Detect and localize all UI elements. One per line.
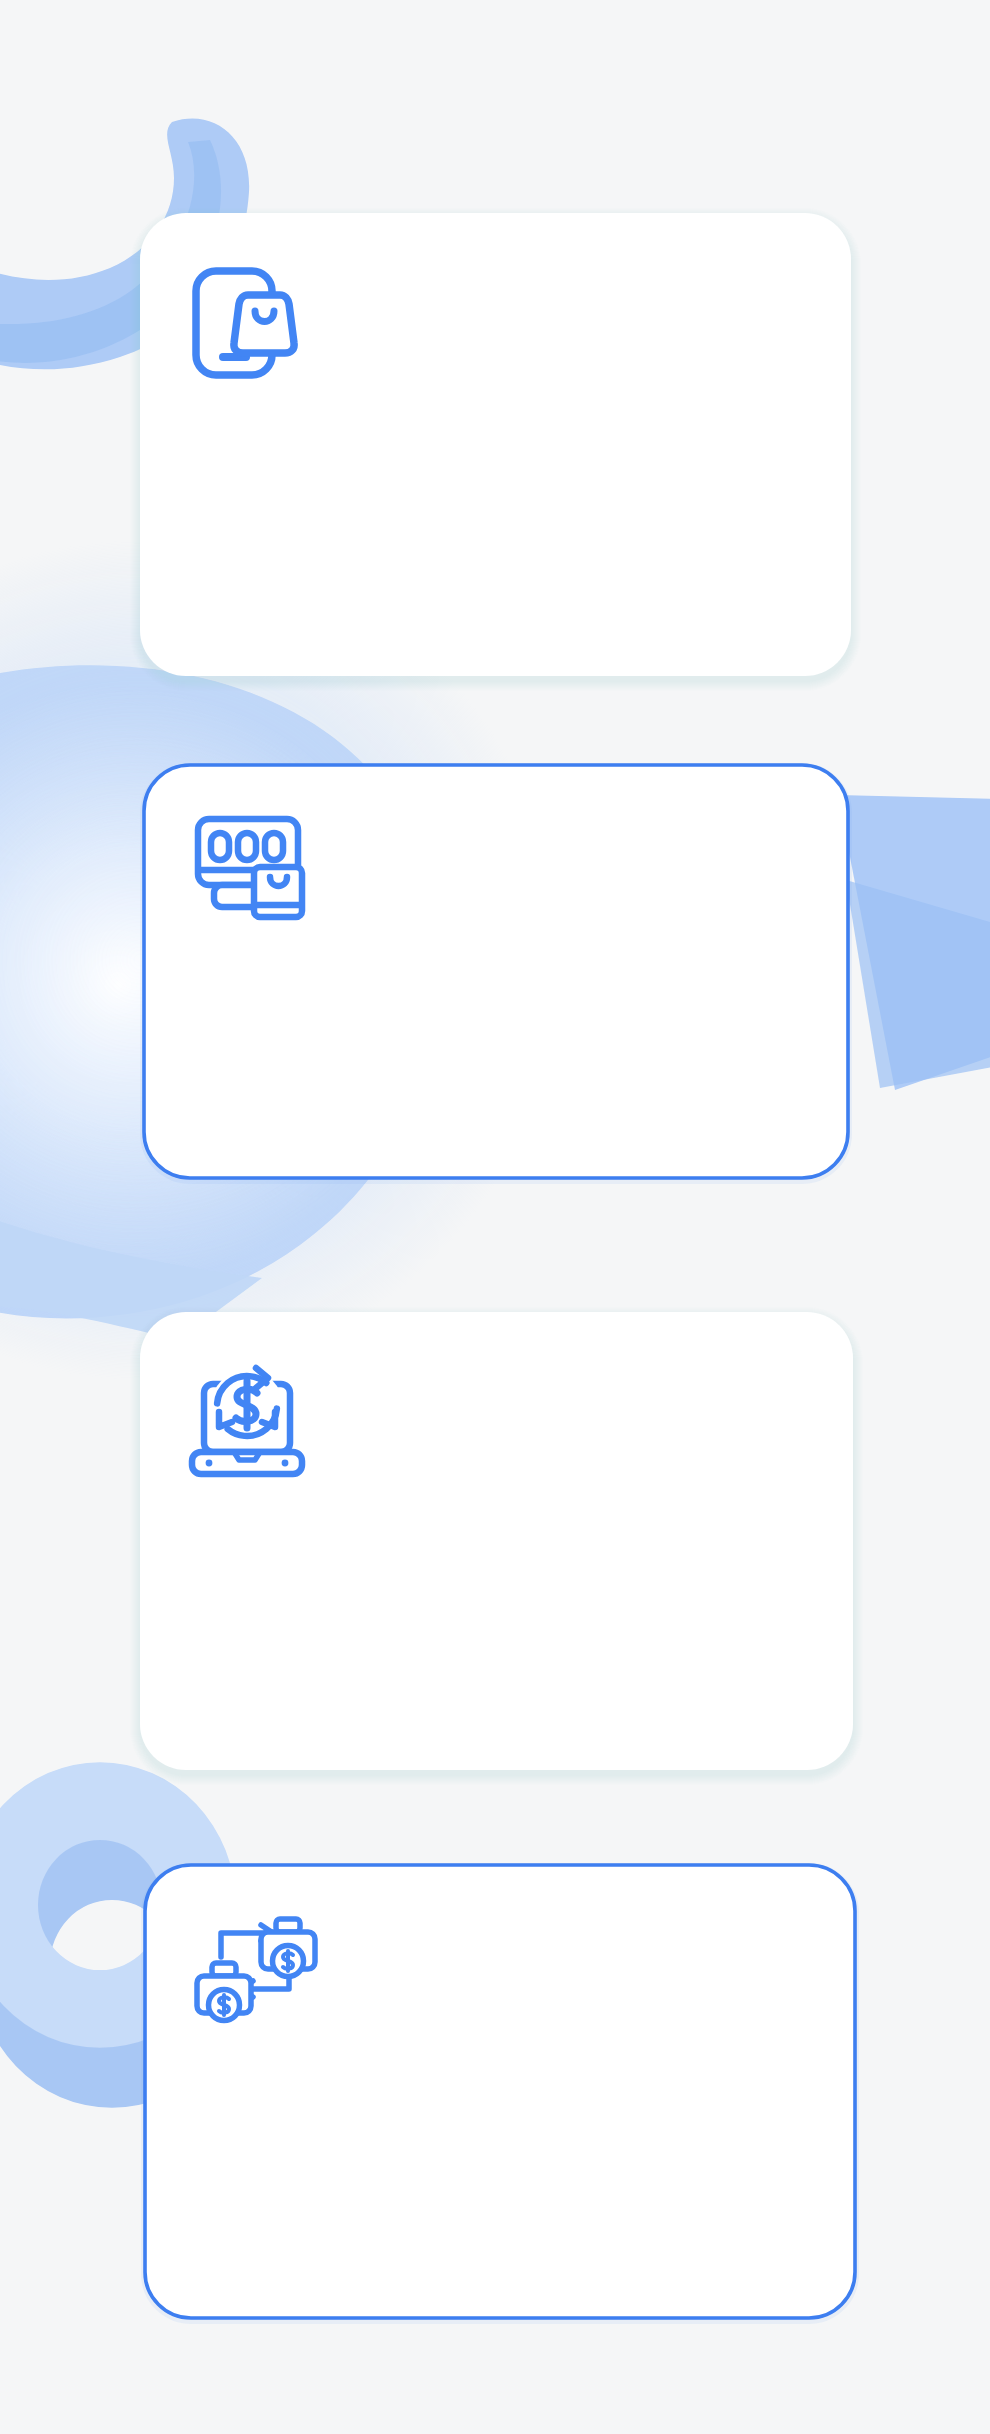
button[interactable]: Online refunds xyxy=(140,1312,853,1770)
button[interactable]: In-store card payment xyxy=(144,765,848,1178)
button[interactable]: Mobile shopping xyxy=(140,213,851,676)
button[interactable]: Business transfers xyxy=(145,1865,855,2318)
